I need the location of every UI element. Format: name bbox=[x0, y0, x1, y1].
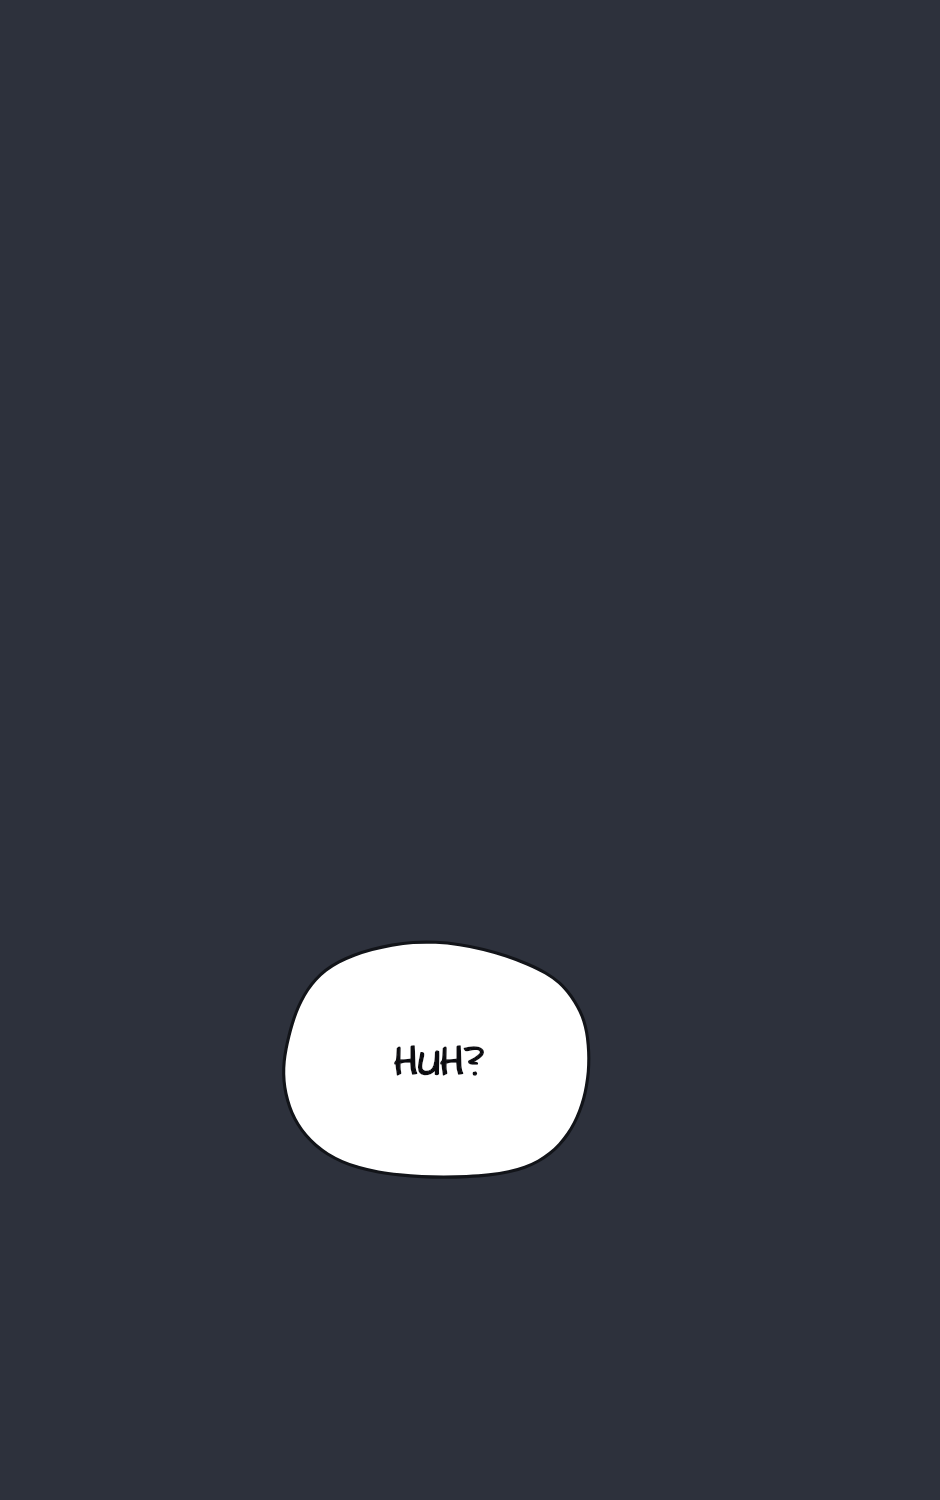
button[interactable]: Speech bubble: HUH? bbox=[281, 940, 589, 1178]
